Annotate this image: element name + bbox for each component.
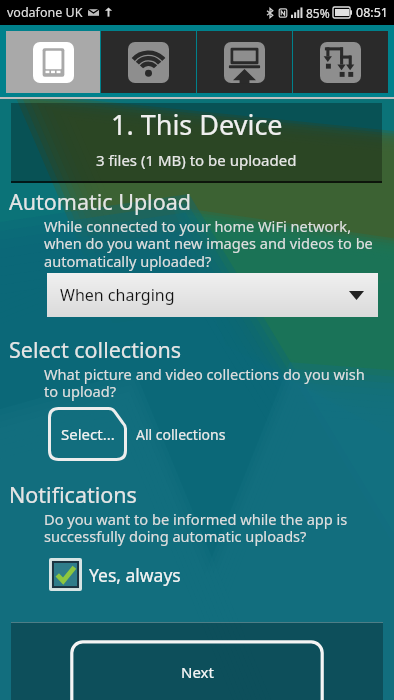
staticText: Automatic Upload <box>9 187 191 216</box>
staticText: Yes, always <box>89 563 181 587</box>
staticText: vodafone UK <box>7 4 83 21</box>
staticText: 08:51 <box>356 4 388 21</box>
button[interactable]: WiFi network <box>101 31 196 93</box>
staticText: Select collections <box>9 335 182 364</box>
button[interactable]: Transfers <box>293 31 388 93</box>
staticText: While connected to your home WiFi networ… <box>44 216 376 271</box>
staticText: Next <box>181 662 214 682</box>
staticText: All collections <box>136 425 226 444</box>
button[interactable]: Yes, always <box>49 558 181 591</box>
staticText: 3 files (1 MB) to be uploaded <box>96 150 297 170</box>
staticText: Do you want to be informed while the app… <box>44 509 376 546</box>
staticText: When charging <box>60 284 175 306</box>
staticText: 1. This Device <box>111 106 283 143</box>
button[interactable]: Next <box>70 640 324 700</box>
staticText: What picture and video collections do yo… <box>44 364 376 401</box>
staticText: Select... <box>61 424 115 444</box>
button[interactable]: This device <box>6 31 100 93</box>
staticText: 85% <box>306 5 330 21</box>
button[interactable]: Select... <box>48 407 127 461</box>
button[interactable]: Computer <box>197 31 292 93</box>
staticText: Notifications <box>9 480 137 509</box>
button[interactable]: When charging <box>47 273 378 317</box>
